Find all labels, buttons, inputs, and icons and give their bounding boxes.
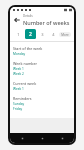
staticText: 1 <box>17 32 20 37</box>
button[interactable]: 1 <box>13 30 24 38</box>
button[interactable]: Reminders <box>13 95 71 115</box>
staticText: Week 1 <box>13 67 24 71</box>
staticText: 3 <box>41 32 44 37</box>
staticText: Reminders <box>13 96 32 101</box>
button[interactable]: Current week <box>13 80 71 95</box>
staticText: Week number <box>13 61 38 66</box>
staticText: Start of the week <box>13 46 43 51</box>
button[interactable]: More <box>59 32 71 37</box>
staticText: Number of weeks <box>23 19 70 26</box>
staticText: Sunday <box>13 102 25 106</box>
staticText: Details <box>23 14 33 18</box>
button[interactable]: Back <box>18 134 26 142</box>
staticText: Monday <box>13 52 26 56</box>
button[interactable]: Back <box>12 15 22 25</box>
button[interactable]: Start of the week <box>13 45 71 60</box>
staticText: Week 1 <box>13 87 24 91</box>
button[interactable]: Week number <box>13 60 71 80</box>
staticText: 2 <box>29 31 32 38</box>
button[interactable]: Recent apps <box>58 134 66 142</box>
staticText: Week 2 <box>13 72 24 76</box>
staticText: More <box>61 33 69 37</box>
staticText: Friday <box>13 107 23 111</box>
button[interactable]: 2 <box>25 29 36 39</box>
button[interactable]: 4 <box>48 30 58 38</box>
staticText: Current week <box>13 81 37 86</box>
button[interactable]: 3 <box>37 30 47 38</box>
button[interactable]: Home <box>38 134 46 142</box>
staticText: 4 <box>52 32 55 37</box>
